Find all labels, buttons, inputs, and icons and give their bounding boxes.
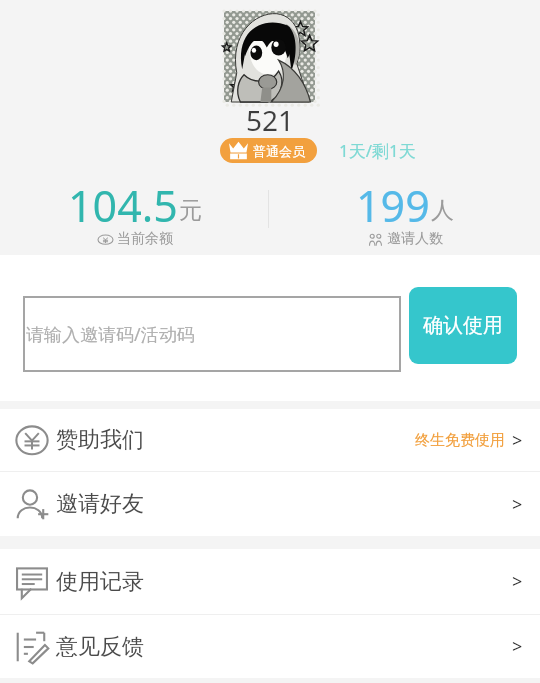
staticText: 终生免费使用	[415, 431, 505, 450]
staticText: 确认使用	[423, 313, 503, 338]
button[interactable]: 使用记录	[0, 549, 540, 614]
button[interactable]: 赞助我们	[0, 409, 540, 471]
staticText: 521	[246, 101, 295, 139]
staticText: 1天/剩1天	[339, 139, 416, 162]
staticText: 请输入邀请码/活动码	[26, 322, 195, 347]
button[interactable]: 请输入邀请码/活动码	[23, 296, 401, 372]
button[interactable]: 意见反馈	[0, 615, 540, 678]
staticText: >	[512, 492, 523, 517]
staticText: 意见反馈	[56, 633, 144, 661]
staticText: >	[512, 428, 523, 453]
staticText: 邀请好友	[56, 490, 144, 518]
staticText: 104.5	[68, 176, 178, 235]
button[interactable]: 确认使用	[409, 287, 517, 364]
staticText: >	[512, 634, 523, 659]
button[interactable]: 邀请好友	[0, 472, 540, 536]
staticText: 当前余额	[117, 230, 173, 248]
button[interactable]: Profile avatar	[224, 11, 315, 102]
staticText: >	[512, 569, 523, 594]
staticText: 赞助我们	[56, 426, 144, 454]
staticText: 199	[356, 176, 430, 235]
staticText: 元	[179, 196, 202, 225]
staticText: 使用记录	[56, 568, 144, 596]
staticText: 邀请人数	[387, 230, 443, 248]
staticText: 人	[431, 196, 454, 225]
button[interactable]: 普通会员	[220, 138, 317, 163]
staticText: 普通会员	[253, 143, 305, 159]
